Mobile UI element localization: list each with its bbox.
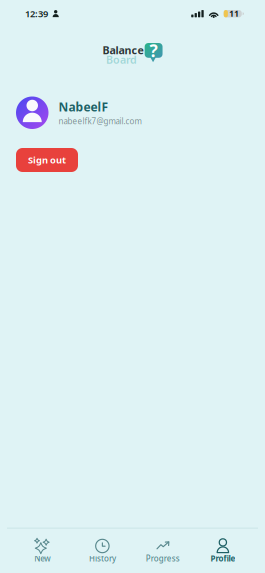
staticText: Sign out <box>28 154 66 166</box>
button[interactable]: History <box>72 528 132 573</box>
staticText: Profile <box>210 553 235 564</box>
staticText: Balance <box>102 43 143 57</box>
staticText: NabeelF <box>58 99 108 115</box>
staticText: Progress <box>146 553 180 564</box>
staticText: nabeelfk7@gmail.com <box>58 116 141 126</box>
button[interactable]: Sign out <box>16 148 78 172</box>
staticText: Board <box>106 52 137 67</box>
staticText: History <box>89 553 116 564</box>
staticText: 12:39 <box>25 7 48 20</box>
staticText: ? <box>150 39 158 62</box>
staticText: New <box>34 553 50 564</box>
staticText: 11 <box>229 8 239 19</box>
button[interactable]: New <box>12 528 72 573</box>
button[interactable]: Profile <box>193 528 253 573</box>
button[interactable]: Progress <box>132 528 193 573</box>
